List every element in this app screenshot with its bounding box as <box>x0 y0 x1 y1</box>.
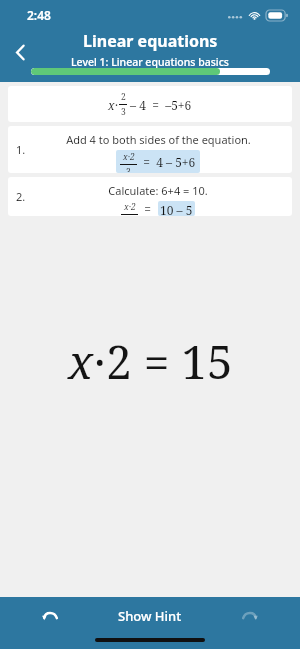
staticText: x <box>68 330 94 393</box>
staticText: 2 = 15 <box>106 330 233 393</box>
staticText: = 4 – 5+6 <box>137 154 196 170</box>
staticText: 2:48 <box>27 7 51 23</box>
staticText: Level 1: Linear equations basics <box>71 55 229 69</box>
staticText: x·2 <box>124 201 136 213</box>
staticText: 2 <box>121 91 126 103</box>
staticText: 3 <box>126 166 131 172</box>
button[interactable]: 1. <box>8 126 292 173</box>
staticText: Calculate: 6+4 = 10. <box>108 183 208 198</box>
button[interactable]: Show Hint <box>100 597 200 635</box>
staticText: 1. <box>16 142 26 157</box>
staticText: 3 <box>121 106 126 118</box>
staticText: = <box>138 201 158 216</box>
button[interactable]: 2. <box>8 177 292 216</box>
staticText: x·2 <box>123 151 135 163</box>
button[interactable]: Redo <box>200 597 300 635</box>
staticText: Add 4 to both sides of the equation. <box>66 132 251 147</box>
staticText: x <box>108 97 115 113</box>
button[interactable]: Undo <box>0 597 100 635</box>
staticText: Linear equations <box>83 30 218 52</box>
staticText: 2. <box>16 189 26 204</box>
staticText: 10 – 5 <box>160 202 193 215</box>
staticText: · <box>94 330 106 393</box>
staticText: Show Hint <box>118 607 182 625</box>
button[interactable]: x <box>8 86 292 122</box>
staticText: · <box>115 97 119 113</box>
staticText: – 4 = –5+6 <box>127 97 192 113</box>
button[interactable]: Back <box>4 36 36 68</box>
